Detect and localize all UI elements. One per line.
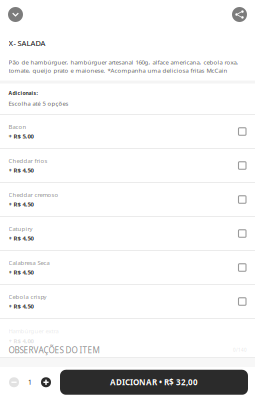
staticText: Catupiry — [8, 225, 32, 233]
button[interactable]: Cheddar frios — [0, 149, 255, 182]
staticText: Escolha até 5 opções — [8, 99, 68, 107]
staticText: Pão de hambúrguer, hambúrguer artesanal … — [8, 58, 238, 74]
button[interactable]: ADICIONAR • R$ 32,00 — [60, 370, 248, 395]
staticText: Bacon — [8, 123, 26, 131]
staticText: + R$ 4,50 — [8, 200, 33, 208]
button[interactable]: Aumentar quantidade — [41, 377, 51, 387]
staticText: + R$ 4,00 — [8, 337, 33, 345]
staticText: Calabresa Seca — [8, 259, 49, 267]
button[interactable]: Catupiry — [0, 217, 255, 250]
staticText: X- SALADA — [8, 38, 45, 48]
button[interactable]: Compartilhar — [232, 7, 247, 22]
staticText: + R$ 5,00 — [8, 132, 33, 140]
staticText: Cheddar frios — [8, 157, 47, 165]
staticText: + R$ 4,50 — [8, 268, 33, 276]
staticText: 0/140 — [233, 347, 247, 353]
button[interactable]: Cheddar cremoso — [0, 183, 255, 216]
staticText: + R$ 4,50 — [8, 234, 33, 242]
staticText: 1 — [28, 378, 32, 387]
staticText: Cheddar cremoso — [8, 191, 58, 199]
staticText: Hambúrguer extra — [8, 327, 58, 335]
staticText: Adicionais: — [8, 89, 37, 96]
button[interactable]: Diminuir quantidade — [9, 377, 19, 387]
staticText: + R$ 4,50 — [8, 166, 33, 174]
button[interactable]: Bacon — [0, 115, 255, 148]
staticText: ADICIONAR • R$ 32,00 — [110, 377, 198, 388]
button[interactable]: Cebola crispy — [0, 285, 255, 318]
button[interactable]: Fechar — [8, 7, 23, 22]
staticText: + R$ 4,50 — [8, 302, 33, 310]
staticText: OBSERVAÇÕES DO ITEM — [8, 344, 99, 356]
staticText: Cebola crispy — [8, 293, 46, 301]
button[interactable]: Calabresa Seca — [0, 251, 255, 284]
